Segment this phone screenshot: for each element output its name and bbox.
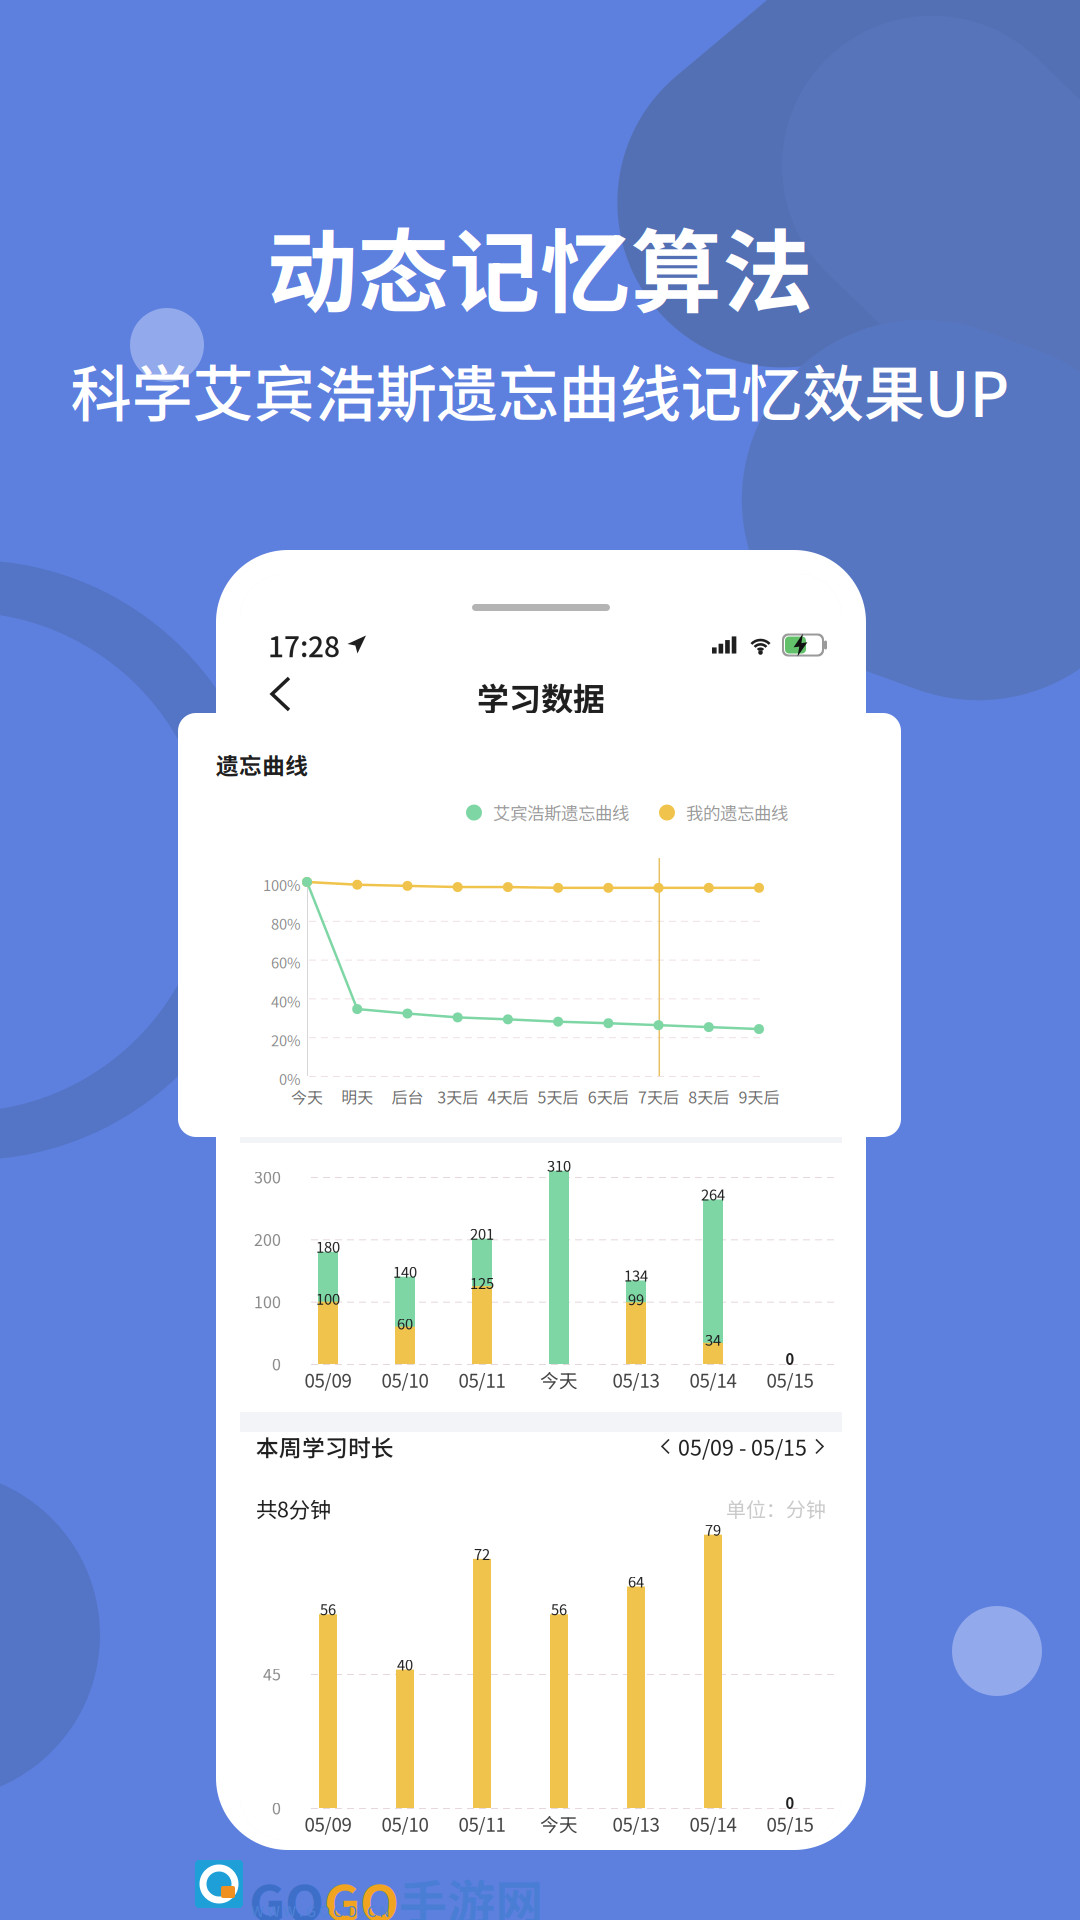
- staticText: 05/09: [304, 1810, 351, 1837]
- staticText: 5天后: [538, 1085, 579, 1108]
- staticText: 9天后: [738, 1085, 779, 1108]
- staticText: 40: [397, 1654, 413, 1675]
- button[interactable]: Previous week: [653, 1432, 678, 1460]
- staticText: 手游网: [399, 1865, 543, 1920]
- staticText: 明天: [341, 1085, 373, 1108]
- staticText: 05/09: [304, 1366, 351, 1393]
- button[interactable]: Back: [250, 666, 311, 722]
- staticText: 99: [628, 1288, 644, 1309]
- staticText: GO: [249, 1863, 324, 1920]
- staticText: 201: [470, 1223, 494, 1244]
- staticText: 6天后: [588, 1085, 629, 1108]
- staticText: GO: [324, 1863, 399, 1920]
- staticText: 40%: [271, 990, 301, 1012]
- staticText: 单位：分钟: [726, 1494, 826, 1523]
- staticText: 4天后: [487, 1085, 528, 1108]
- staticText: 20%: [271, 1029, 301, 1050]
- staticText: 134: [624, 1264, 648, 1286]
- staticText: 科学艾宾浩斯遗忘曲线记忆效果UP: [70, 345, 1009, 434]
- staticText: 200: [254, 1227, 281, 1250]
- staticText: 310: [547, 1155, 571, 1176]
- staticText: 05/13: [612, 1810, 659, 1837]
- staticText: 140: [393, 1261, 417, 1282]
- staticText: 45: [263, 1662, 281, 1685]
- staticText: 300: [254, 1165, 281, 1188]
- staticText: 05/15: [766, 1366, 813, 1393]
- staticText: 17:28: [268, 625, 340, 665]
- staticText: 72: [474, 1543, 490, 1564]
- staticText: 7天后: [638, 1085, 679, 1108]
- staticText: 56: [551, 1598, 567, 1619]
- staticText: 180: [316, 1236, 340, 1257]
- staticText: 100: [254, 1290, 281, 1313]
- staticText: 125: [470, 1272, 494, 1293]
- staticText: 64: [628, 1571, 644, 1592]
- staticText: 3天后: [437, 1085, 478, 1108]
- staticText: 05/14: [689, 1810, 736, 1837]
- staticText: 100: [316, 1288, 340, 1309]
- staticText: 0: [785, 1792, 794, 1813]
- staticText: 60: [397, 1313, 413, 1334]
- staticText: 学习数据: [477, 674, 605, 720]
- staticText: 艾宾浩斯遗忘曲线: [493, 800, 629, 825]
- staticText: 后台: [391, 1085, 423, 1108]
- staticText: 0: [272, 1352, 281, 1375]
- staticText: 今天: [540, 1366, 578, 1393]
- staticText: 100%: [263, 874, 301, 895]
- staticText: 遗忘曲线: [216, 748, 308, 781]
- staticText: 79: [705, 1519, 721, 1540]
- staticText: 05/11: [458, 1810, 505, 1837]
- staticText: 60%: [271, 952, 301, 973]
- staticText: 80%: [271, 913, 301, 934]
- staticText: 264: [701, 1183, 725, 1205]
- staticText: 本周学习时长: [256, 1430, 394, 1463]
- staticText: 05/11: [458, 1366, 505, 1393]
- staticText: 0: [785, 1348, 794, 1369]
- staticText: 今天: [540, 1810, 578, 1837]
- staticText: 05/09 - 05/15: [678, 1431, 807, 1462]
- staticText: 动态记忆算法: [267, 200, 813, 331]
- button[interactable]: Next week: [807, 1432, 832, 1460]
- staticText: 05/10: [381, 1810, 428, 1837]
- staticText: 0%: [279, 1068, 301, 1089]
- staticText: 05/13: [612, 1366, 659, 1393]
- staticText: 05/10: [381, 1366, 428, 1393]
- staticText: 34: [705, 1329, 721, 1350]
- staticText: 共8分钟: [256, 1493, 331, 1524]
- staticText: 今天: [291, 1085, 323, 1108]
- staticText: 我的遗忘曲线: [686, 800, 788, 825]
- staticText: 05/15: [766, 1810, 813, 1837]
- staticText: W W W . G O G O . C N: [251, 1900, 390, 1920]
- staticText: 0: [272, 1796, 281, 1819]
- staticText: 8天后: [688, 1085, 729, 1108]
- staticText: 05/14: [689, 1366, 736, 1393]
- staticText: 56: [320, 1598, 336, 1619]
